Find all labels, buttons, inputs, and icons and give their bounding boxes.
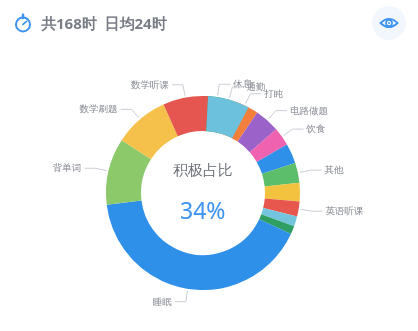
button[interactable]: Toggle chart visibility [372,6,406,40]
staticText: 共168时 日均24时 [41,13,167,33]
button[interactable] [0,0,418,331]
